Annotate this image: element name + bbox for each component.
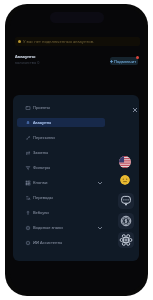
button[interactable]: Фильтры xyxy=(17,163,105,172)
button[interactable]: Проекты xyxy=(17,103,105,112)
button[interactable]: Billing xyxy=(118,213,134,229)
button[interactable]: Close menu xyxy=(130,105,139,115)
staticText: Пересылки xyxy=(33,135,55,140)
button[interactable]: Profile xyxy=(120,175,130,185)
button[interactable]: Language xyxy=(119,156,131,168)
button[interactable]: Аккаунты xyxy=(17,118,105,127)
button[interactable]: Подключить xyxy=(110,57,138,65)
button[interactable]: Замены xyxy=(17,148,105,157)
staticText: Аккаунты xyxy=(15,54,36,59)
button[interactable]: Водяные знаки xyxy=(17,223,105,232)
staticText: Проекты xyxy=(33,105,50,110)
staticText: Фильтры xyxy=(33,165,51,170)
staticText: Водяные знаки xyxy=(33,225,63,230)
staticText: Переводы xyxy=(33,195,53,200)
staticText: Замены xyxy=(33,150,49,155)
staticText: Подключить xyxy=(114,59,138,64)
staticText: ИИ Ассистенты xyxy=(33,240,63,245)
staticText: Кнопки xyxy=(33,180,48,185)
button[interactable]: Вебхуки xyxy=(17,208,105,217)
button[interactable]: ИИ Ассистенты xyxy=(17,238,105,247)
staticText: Вебхуки xyxy=(33,210,49,215)
button[interactable]: Settings xyxy=(118,232,134,248)
button[interactable]: Пересылки xyxy=(17,133,105,142)
staticText: количество 0 xyxy=(15,60,40,65)
button[interactable]: Переводы xyxy=(17,193,105,202)
button[interactable]: Support chat xyxy=(118,193,134,209)
staticText: У вас нет подключенных аккаунтов. xyxy=(23,39,95,45)
button[interactable]: Кнопки xyxy=(17,178,105,187)
staticText: Аккаунты xyxy=(33,120,52,125)
